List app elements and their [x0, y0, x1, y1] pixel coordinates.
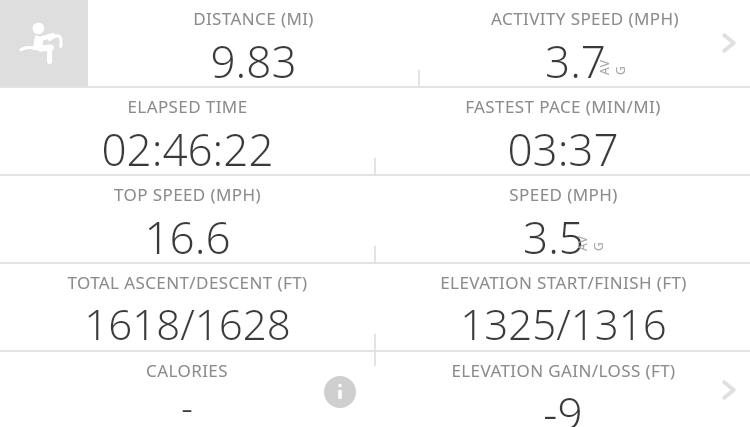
- button[interactable]: TOTAL ASCENT/DESCENT (FT): [0, 264, 374, 350]
- staticText: ELAPSED TIME: [127, 95, 248, 118]
- button[interactable]: Activity type: [0, 0, 88, 86]
- staticText: 16.6: [144, 207, 231, 262]
- staticText: 3.7: [545, 31, 606, 86]
- button[interactable]: TOP SPEED (MPH): [0, 176, 374, 262]
- staticText: SPEED (MPH): [509, 183, 618, 206]
- button[interactable]: ACTIVITY SPEED (MPH): [420, 0, 750, 86]
- button[interactable]: FASTEST PACE (MIN/MI): [376, 88, 750, 174]
- staticText: ACTIVITY SPEED (MPH): [491, 7, 679, 30]
- button[interactable]: CALORIES: [0, 352, 374, 427]
- staticText: 02:46:22: [101, 119, 274, 174]
- button[interactable]: ELEVATION GAIN/LOSS (FT): [376, 352, 750, 427]
- button[interactable]: Information: [324, 376, 356, 408]
- button[interactable]: ELAPSED TIME: [0, 88, 374, 174]
- staticText: TOP SPEED (MPH): [114, 183, 261, 206]
- staticText: -: [181, 383, 193, 427]
- button[interactable]: Next: [712, 26, 746, 60]
- staticText: 1325/1316: [460, 295, 667, 350]
- button[interactable]: Next: [712, 373, 746, 407]
- staticText: FASTEST PACE (MIN/MI): [465, 95, 661, 118]
- button[interactable]: ELEVATION START/FINISH (FT): [376, 264, 750, 350]
- staticText: DISTANCE (MI): [193, 7, 314, 30]
- staticText: CALORIES: [146, 359, 228, 382]
- staticText: 03:37: [507, 119, 619, 174]
- staticText: -9: [543, 383, 583, 427]
- button[interactable]: DISTANCE (MI): [88, 0, 418, 86]
- staticText: AVG: [574, 231, 606, 251]
- button[interactable]: SPEED (MPH): [376, 176, 750, 262]
- staticText: TOTAL ASCENT/DESCENT (FT): [67, 271, 308, 294]
- staticText: 3.5: [523, 207, 584, 262]
- staticText: 1618/1628: [84, 295, 291, 350]
- staticText: ELEVATION GAIN/LOSS (FT): [451, 359, 676, 382]
- staticText: ELEVATION START/FINISH (FT): [440, 271, 687, 294]
- staticText: AVG: [596, 55, 628, 75]
- staticText: 9.83: [210, 31, 297, 86]
